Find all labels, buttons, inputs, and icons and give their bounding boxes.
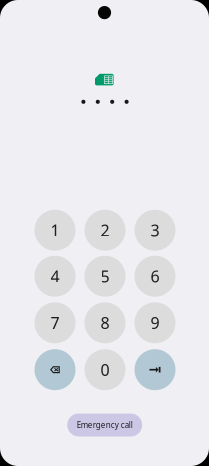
staticText: 2 xyxy=(100,220,109,241)
button[interactable]: 8 xyxy=(84,302,125,343)
staticText: 8 xyxy=(100,312,109,333)
button[interactable]: 7 xyxy=(34,302,75,343)
button[interactable]: 0 xyxy=(84,349,125,390)
button[interactable]: 3 xyxy=(134,210,175,251)
staticText: 1 xyxy=(50,220,59,241)
button[interactable]: 2 xyxy=(84,210,125,251)
staticText: 5 xyxy=(100,266,109,287)
button[interactable]: 9 xyxy=(134,302,175,343)
staticText: 6 xyxy=(150,266,159,287)
button[interactable]: 1 xyxy=(34,210,75,251)
button[interactable]: Enter xyxy=(134,349,175,390)
button[interactable]: 5 xyxy=(84,256,125,297)
staticText: 9 xyxy=(150,312,159,333)
staticText: 4 xyxy=(50,266,59,287)
staticText: Emergency call xyxy=(77,420,133,430)
staticText: 3 xyxy=(150,220,159,241)
button[interactable]: 4 xyxy=(34,256,75,297)
button[interactable]: 6 xyxy=(134,256,175,297)
staticText: 0 xyxy=(100,359,109,380)
button[interactable]: Backspace xyxy=(34,349,75,390)
button[interactable]: Emergency call xyxy=(67,413,142,436)
staticText: 7 xyxy=(50,312,59,333)
